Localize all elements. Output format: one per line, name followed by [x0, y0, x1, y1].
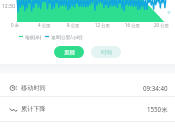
staticText: 16 公里 — [125, 22, 140, 28]
staticText: 8 公里 — [67, 22, 80, 28]
staticText: 移动时间 — [21, 84, 46, 92]
staticText: 12:30 — [2, 3, 15, 10]
button[interactable]: 累计下降 — [0, 96, 175, 122]
staticText: 20 公里 — [154, 22, 169, 28]
button[interactable]: 里程 — [54, 46, 84, 58]
staticText: 4 公里 — [38, 22, 51, 28]
button[interactable]: 时间 — [91, 46, 121, 58]
staticText: 09:34:40 — [143, 84, 168, 92]
staticText: 里程 — [64, 49, 75, 56]
staticText: 海拔(米) — [25, 34, 42, 40]
staticText: 1550米 — [147, 105, 168, 113]
staticText: 12 公里 — [95, 22, 110, 28]
staticText: 速度(公里/小时) — [51, 34, 83, 40]
button[interactable]: 移动时间 — [0, 79, 175, 97]
staticText: 累计下降 — [21, 105, 46, 113]
staticText: 0 米 — [11, 22, 20, 28]
staticText: 时间 — [101, 49, 112, 56]
